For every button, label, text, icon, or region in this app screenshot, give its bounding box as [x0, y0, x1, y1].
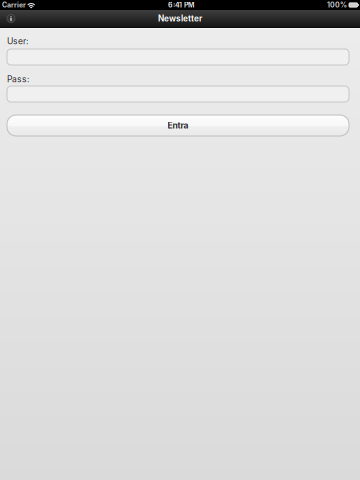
staticText: Entra [167, 120, 188, 131]
staticText: Newsletter [158, 13, 202, 23]
button[interactable]: Entra [7, 115, 349, 136]
staticText: 6:41 PM [168, 1, 194, 9]
staticText: Carrier [2, 1, 26, 9]
staticText: 100% [327, 1, 347, 9]
staticText: Pass: [7, 74, 29, 84]
button[interactable]: Info [3, 11, 19, 26]
staticText: User: [7, 36, 28, 46]
